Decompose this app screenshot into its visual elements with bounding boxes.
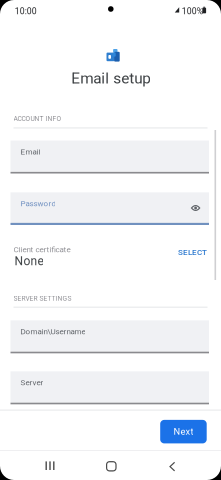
staticText: 10:00	[15, 6, 37, 16]
staticText: Domain\Username	[20, 327, 85, 336]
button[interactable]: Back	[146, 452, 198, 480]
staticText: Client certificate	[13, 245, 70, 254]
staticText: SELECT	[178, 247, 207, 257]
staticText: Password	[20, 199, 56, 208]
button[interactable]: Recent apps	[24, 451, 76, 480]
staticText: Email	[20, 147, 40, 156]
button[interactable]: Next	[160, 420, 207, 443]
staticText: None	[14, 254, 43, 268]
staticText: ACCOUNT INFO	[14, 115, 62, 123]
button[interactable]: SELECT	[163, 240, 207, 264]
staticText: Email setup	[71, 69, 151, 87]
staticText: Next	[173, 426, 193, 437]
button[interactable]: Home	[85, 452, 137, 480]
staticText: Server	[20, 378, 43, 387]
staticText: 100%	[182, 6, 203, 16]
staticText: SERVER SETTINGS	[14, 295, 72, 302]
